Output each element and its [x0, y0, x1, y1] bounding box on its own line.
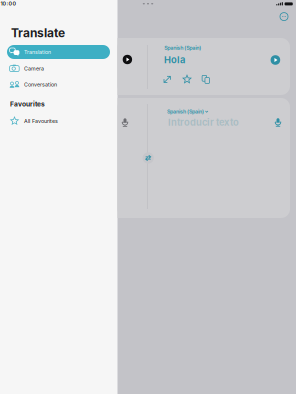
button[interactable]: Full screen	[161, 73, 173, 85]
staticText: Introducir texto	[168, 117, 239, 128]
button[interactable]: Dictate	[269, 113, 287, 131]
staticText: 10:00	[0, 0, 16, 7]
button[interactable]: Camera	[7, 61, 110, 75]
staticText: Favourites	[10, 100, 45, 108]
button[interactable]: Conversation	[7, 77, 110, 91]
staticText: Conversation	[24, 81, 57, 88]
staticText: Camera	[24, 65, 44, 72]
staticText: All Favourites	[24, 118, 58, 124]
button[interactable]: Swap languages	[141, 151, 155, 165]
staticText: Translation	[24, 49, 51, 55]
button[interactable]: Record speech	[116, 113, 134, 131]
button[interactable]: Play translation	[265, 50, 285, 70]
staticText: Hola	[164, 54, 185, 65]
button[interactable]: Add to favourites	[181, 73, 193, 85]
staticText: Translate	[11, 26, 65, 40]
button[interactable]: All Favourites	[7, 114, 110, 128]
button[interactable]: Translation	[7, 45, 110, 59]
staticText: Spanish (Spain)	[164, 45, 201, 51]
button[interactable]: More options	[278, 11, 290, 23]
staticText: Spanish (Spain)	[167, 108, 204, 115]
button[interactable]: Copy	[200, 73, 212, 85]
button[interactable]: Play source	[117, 49, 137, 69]
